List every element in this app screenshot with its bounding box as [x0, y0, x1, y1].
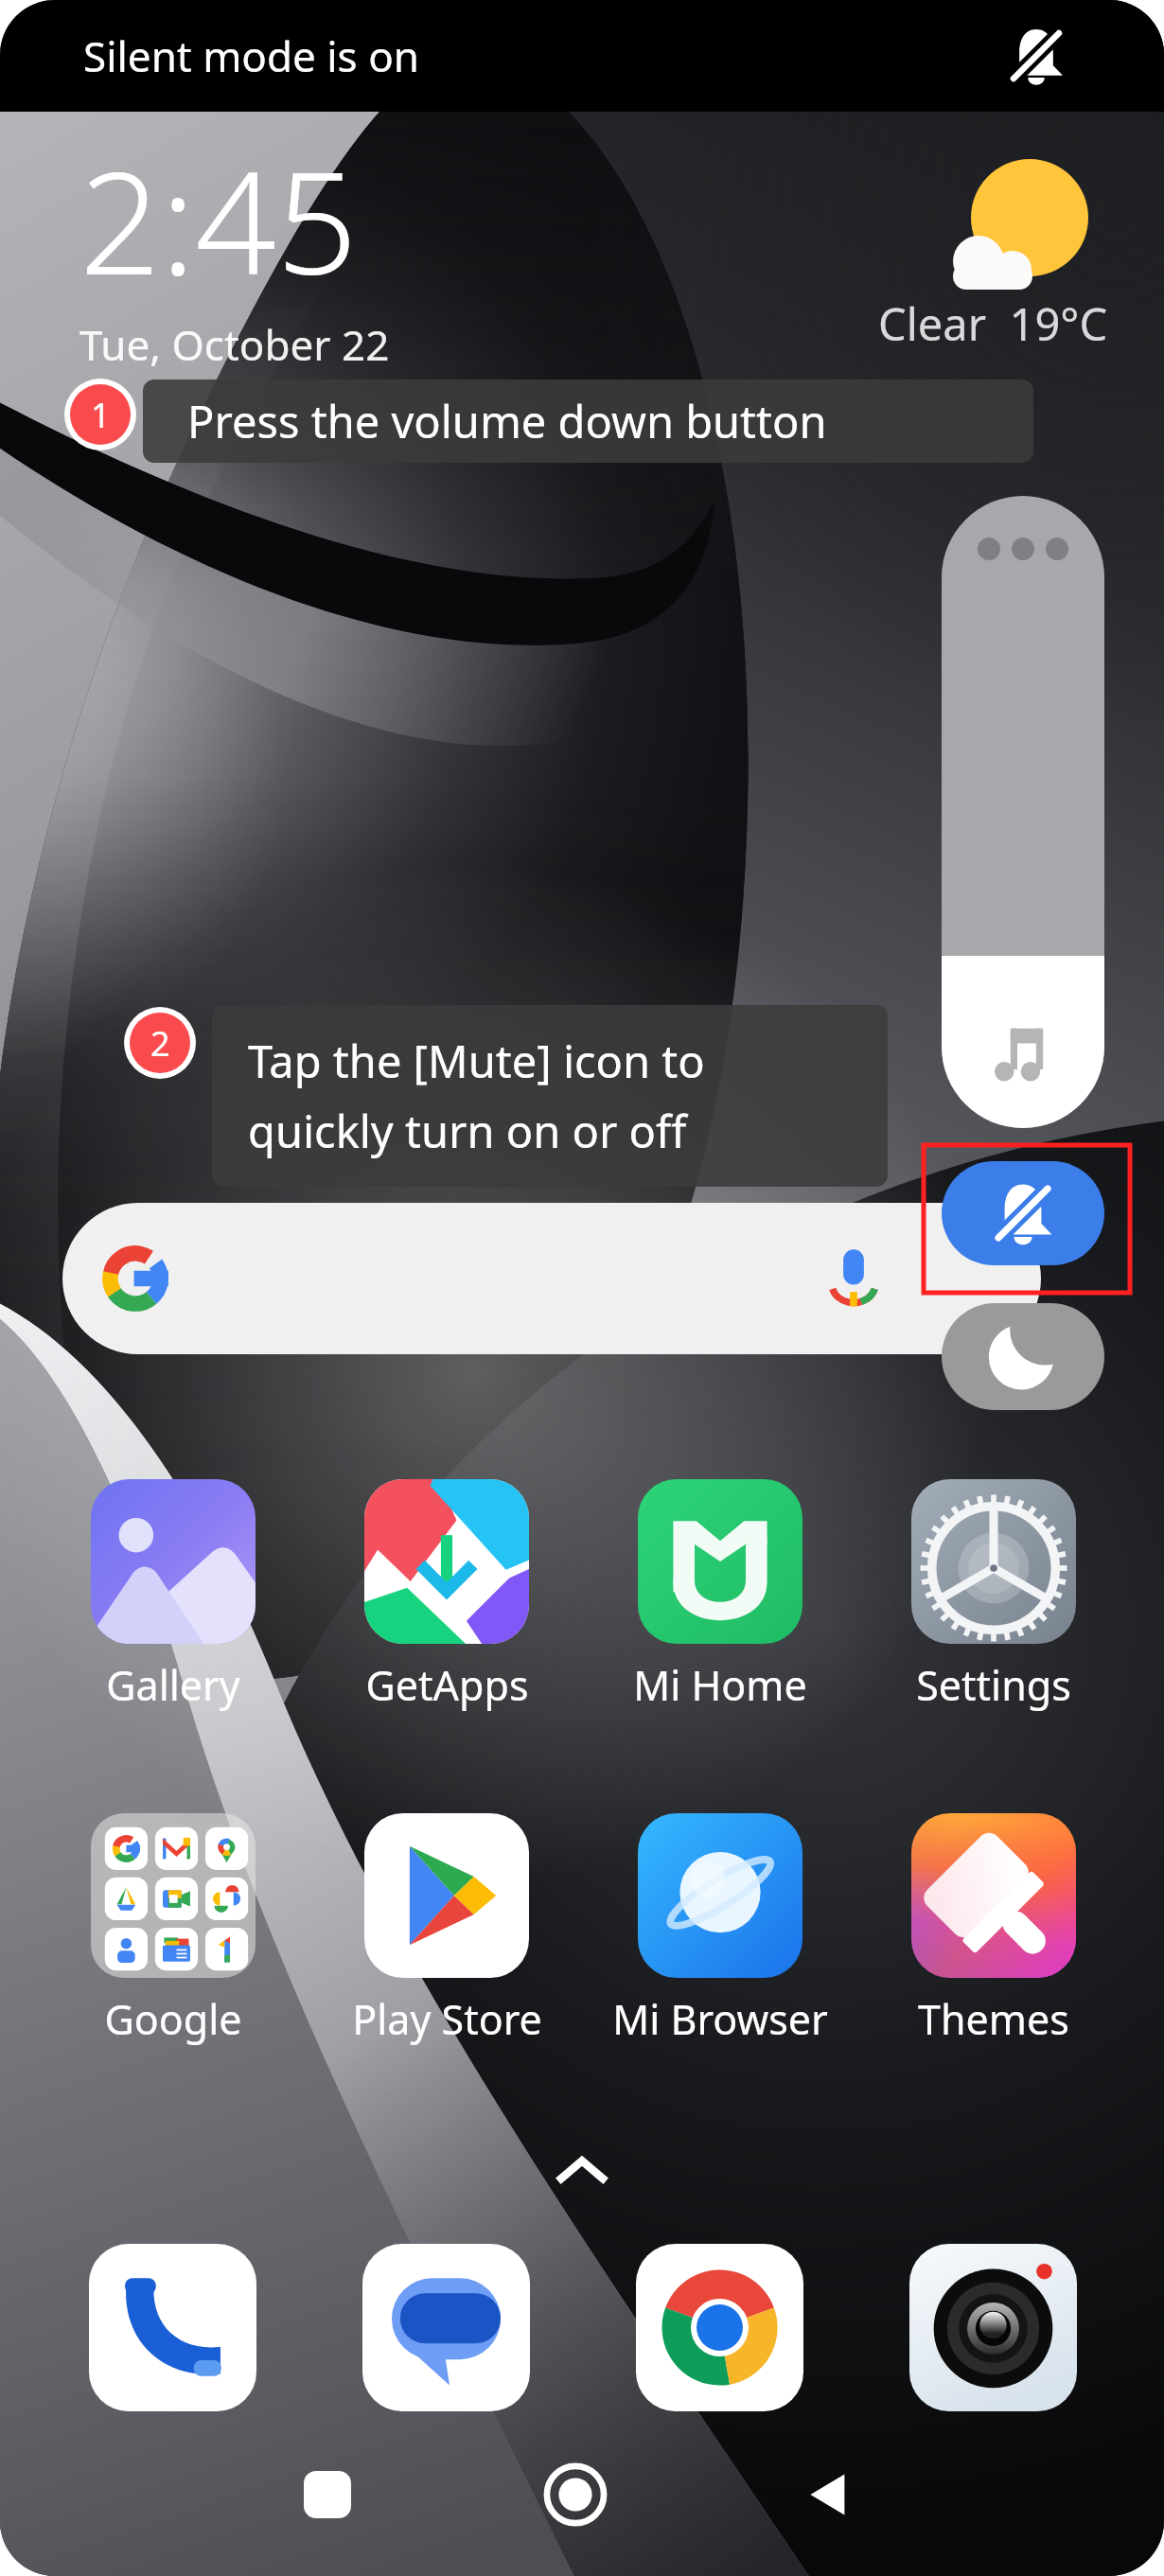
- staticText: GetApps: [365, 1657, 529, 1713]
- button[interactable]: Settings: [856, 1479, 1131, 1713]
- staticText: Tue, October 22: [79, 316, 390, 373]
- button[interactable]: [62, 1203, 1041, 1354]
- staticText: Settings: [916, 1657, 1071, 1713]
- staticText: Silent mode is on: [83, 27, 419, 84]
- button[interactable]: Gallery: [36, 1479, 310, 1713]
- staticText: Play Store: [352, 1991, 542, 2047]
- button[interactable]: Do not disturb: [942, 1303, 1104, 1410]
- button[interactable]: Back: [781, 2447, 875, 2542]
- button[interactable]: Recents: [280, 2447, 375, 2542]
- staticText: Mi Browser: [612, 1991, 828, 2047]
- button[interactable]: GetApps: [309, 1479, 584, 1713]
- button[interactable]: Press the volume down button: [143, 379, 1033, 463]
- button[interactable]: Mute: [942, 1161, 1104, 1265]
- button[interactable]: Play Store: [309, 1813, 584, 2047]
- button[interactable]: Themes: [856, 1813, 1131, 2047]
- staticText: Clear 19°C: [878, 293, 1108, 354]
- button[interactable]: Google: [36, 1813, 310, 2047]
- button[interactable]: Chrome: [636, 2244, 803, 2411]
- button[interactable]: Clear 19°C: [833, 142, 1107, 284]
- staticText: Mi Home: [633, 1657, 807, 1713]
- other: Silent mode: [1003, 23, 1069, 89]
- button[interactable]: Messages: [362, 2244, 530, 2411]
- staticText: Google: [104, 1991, 242, 2047]
- staticText: Gallery: [106, 1657, 240, 1713]
- staticText: 2: [150, 1020, 170, 1067]
- staticText: 2:45: [79, 123, 358, 316]
- staticText: 1: [91, 392, 111, 438]
- button[interactable]: Phone: [89, 2244, 256, 2411]
- button[interactable]: Home: [528, 2447, 623, 2542]
- staticText: Press the volume down button: [187, 391, 827, 451]
- button[interactable]: 2:45: [79, 123, 390, 373]
- button[interactable]: [942, 496, 1104, 1128]
- staticText: Themes: [918, 1991, 1069, 2047]
- button[interactable]: Mi Browser: [583, 1813, 857, 2047]
- button[interactable]: Tap the [Mute] icon to quickly turn on o…: [212, 1005, 888, 1187]
- button[interactable]: Camera: [909, 2244, 1077, 2411]
- staticText: Tap the [Mute] icon to quickly turn on o…: [248, 1031, 705, 1161]
- button[interactable]: Mi Home: [583, 1479, 857, 1713]
